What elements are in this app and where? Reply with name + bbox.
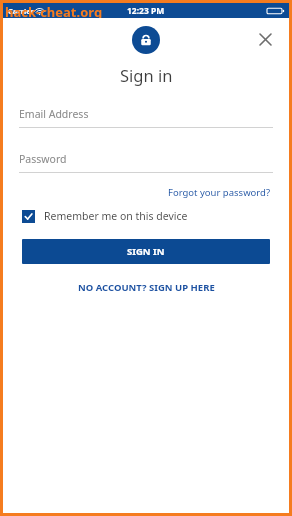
staticText: hack-cheat.org bbox=[5, 3, 103, 18]
button[interactable]: Password bbox=[19, 149, 273, 173]
button[interactable]: Secure sign in bbox=[132, 26, 160, 54]
button[interactable]: Forgot your password? bbox=[166, 184, 273, 201]
button[interactable]: Remember me on this device bbox=[19, 209, 273, 223]
staticText: SIGN IN bbox=[127, 245, 165, 258]
staticText: Remember me on this device bbox=[44, 209, 188, 223]
staticText: Sign in bbox=[120, 64, 173, 86]
button[interactable]: SIGN IN bbox=[22, 239, 270, 264]
staticText: Forgot your password? bbox=[168, 186, 271, 199]
staticText: Password bbox=[19, 152, 67, 166]
staticText: NO ACCOUNT? SIGN UP HERE bbox=[78, 281, 215, 294]
button[interactable]: Email Address bbox=[19, 104, 273, 128]
button[interactable]: Close bbox=[253, 27, 277, 51]
staticText: Carrier bbox=[8, 6, 35, 16]
staticText: 12:23 PM bbox=[127, 5, 165, 17]
staticText: Email Address bbox=[19, 107, 89, 121]
button[interactable]: NO ACCOUNT? SIGN UP HERE bbox=[76, 279, 217, 296]
